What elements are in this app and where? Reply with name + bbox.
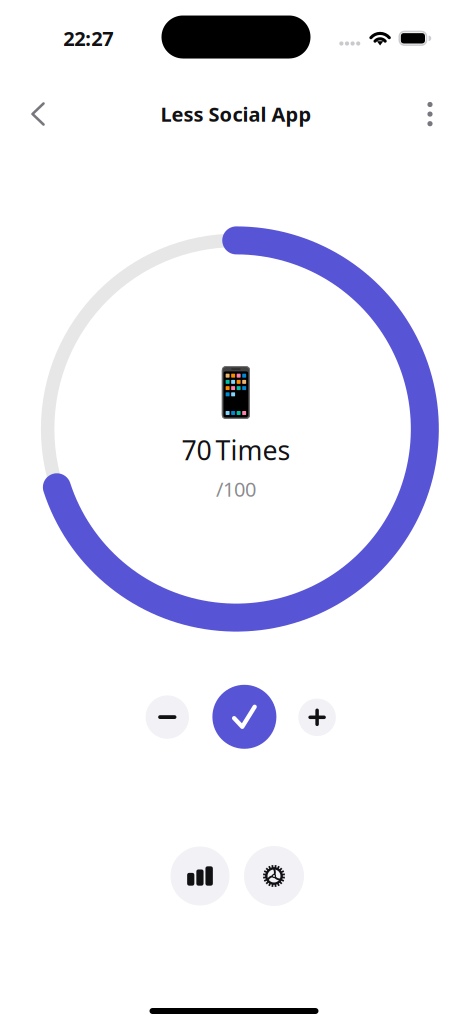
staticText: 70 Times [181, 432, 290, 468]
staticText: 📱 [206, 365, 266, 421]
button[interactable]: Mark as done [212, 685, 276, 749]
button[interactable]: Decrease [146, 695, 189, 739]
staticText: Less Social App [160, 100, 311, 128]
button[interactable]: Increase [298, 698, 336, 736]
staticText: /100 [216, 475, 256, 503]
button[interactable]: More options [407, 91, 453, 137]
button[interactable]: Statistics [170, 846, 229, 905]
button[interactable]: Settings [244, 846, 304, 906]
staticText: 22:27 [63, 25, 113, 52]
button[interactable]: Back [15, 91, 61, 137]
